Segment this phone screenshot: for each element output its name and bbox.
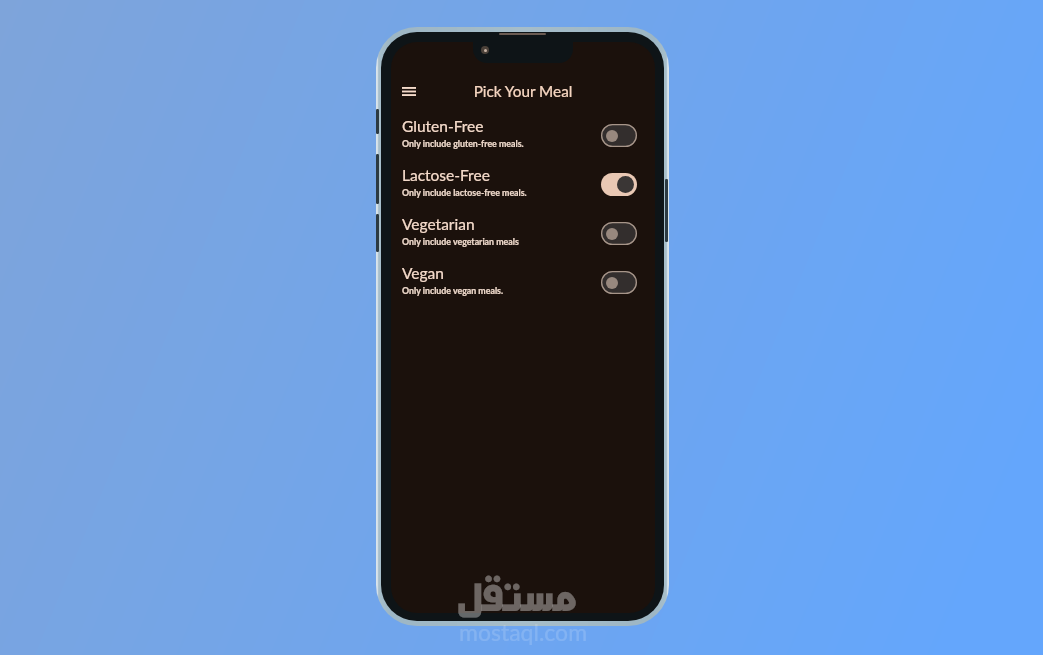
button[interactable]: Vegan — [391, 255, 655, 304]
button[interactable]: Disabled — [601, 124, 637, 147]
button[interactable]: Vegetarian — [391, 206, 655, 255]
staticText: mostaql.com — [459, 618, 588, 646]
staticText: Lactose-Free — [402, 166, 490, 185]
button[interactable]: Disabled — [601, 222, 637, 245]
button[interactable]: Enabled — [601, 173, 637, 196]
staticText: Only include vegetarian meals — [402, 236, 519, 247]
button[interactable]: Lactose-Free — [391, 157, 655, 206]
staticText: Vegan — [402, 264, 444, 283]
staticText: Gluten-Free — [402, 117, 484, 136]
button[interactable]: Open menu — [397, 79, 421, 103]
staticText: Only include vegan meals. — [402, 285, 504, 296]
staticText: Only include gluten-free meals. — [402, 138, 524, 149]
staticText: مستقل — [456, 569, 579, 626]
staticText: Only include lactose-free meals. — [402, 187, 527, 198]
button[interactable]: Gluten-Free — [391, 108, 655, 157]
button[interactable]: Disabled — [601, 271, 637, 294]
staticText: Pick Your Meal — [391, 82, 655, 100]
staticText: Vegetarian — [402, 215, 475, 234]
